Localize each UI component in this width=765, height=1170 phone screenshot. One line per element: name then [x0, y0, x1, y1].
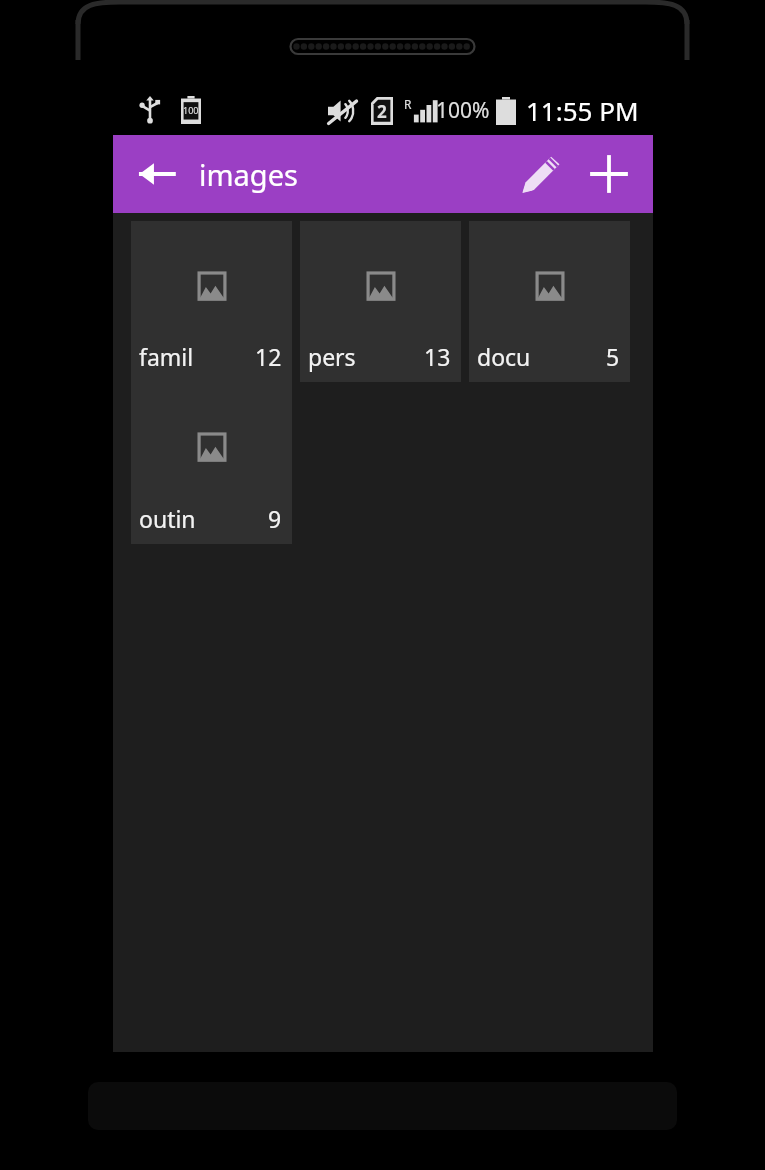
button[interactable]: personal… [300, 221, 461, 382]
button[interactable]: Back [123, 140, 191, 208]
staticText: documents [477, 341, 541, 372]
button[interactable]: family… [131, 221, 292, 382]
staticText: images [199, 155, 298, 194]
staticText: 2 [377, 100, 387, 123]
staticText: 9 [268, 503, 282, 534]
button[interactable]: documents [469, 221, 630, 382]
button[interactable]: Edit [507, 140, 575, 208]
staticText: 13 [424, 341, 451, 372]
staticText: family… [139, 341, 197, 372]
button[interactable]: Add [575, 140, 643, 208]
staticText: outing photos [139, 503, 203, 534]
staticText: R [404, 96, 412, 112]
staticText: 100 [183, 104, 199, 116]
staticText: 12 [255, 341, 282, 372]
staticText: personal… [308, 341, 366, 372]
staticText: 5 [606, 341, 620, 372]
button[interactable]: outing photos [131, 382, 292, 544]
staticText: 11:55 PM [526, 93, 639, 128]
staticText: 100% [436, 96, 490, 125]
